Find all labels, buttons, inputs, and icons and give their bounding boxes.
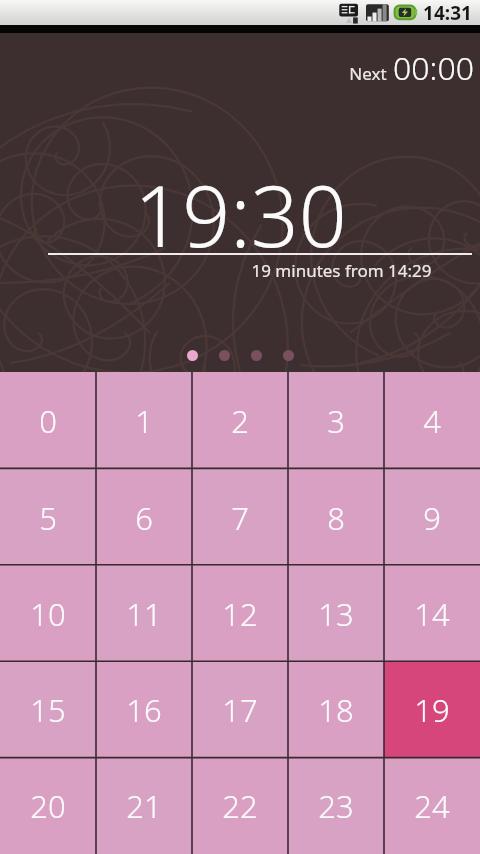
staticText: 5 <box>39 497 57 539</box>
button[interactable]: 7 <box>192 469 288 566</box>
button[interactable]: Next <box>349 41 474 85</box>
staticText: 19 <box>414 689 450 731</box>
button[interactable]: 19 <box>384 662 480 758</box>
staticText: 8 <box>327 497 345 539</box>
button[interactable]: Page 1 <box>187 350 198 361</box>
staticText: 2 <box>231 400 249 442</box>
button[interactable]: 1 <box>96 372 192 469</box>
staticText: 19:30 <box>134 157 347 271</box>
button[interactable]: 13 <box>288 566 384 662</box>
button[interactable]: 22 <box>192 758 288 854</box>
button[interactable]: 2 <box>192 372 288 469</box>
button[interactable]: 23 <box>288 758 384 854</box>
button[interactable]: 24 <box>384 758 480 854</box>
staticText: 23 <box>318 785 354 827</box>
staticText: 1 <box>135 400 153 442</box>
staticText: 18 <box>318 689 354 731</box>
button[interactable]: 0 <box>0 372 96 469</box>
staticText: 4 <box>423 400 441 442</box>
button[interactable]: Page 3 <box>251 350 262 361</box>
staticText: 21 <box>126 785 162 827</box>
button[interactable]: 10 <box>0 566 96 662</box>
button[interactable]: 4 <box>384 372 480 469</box>
staticText: 20 <box>30 785 66 827</box>
button[interactable]: 5 <box>0 469 96 566</box>
button[interactable]: 3 <box>288 372 384 469</box>
staticText: 19 minutes from 14:29 <box>251 259 432 282</box>
staticText: 14:31 <box>423 0 472 25</box>
button[interactable]: 11 <box>96 566 192 662</box>
button[interactable]: 19:30 <box>0 157 480 271</box>
staticText: 24 <box>414 785 450 827</box>
button[interactable]: Page 2 <box>219 350 230 361</box>
staticText: 00:00 <box>393 46 474 90</box>
staticText: 13 <box>318 593 354 635</box>
staticText: 10 <box>30 593 66 635</box>
button[interactable]: 18 <box>288 662 384 758</box>
button[interactable]: 8 <box>288 469 384 566</box>
staticText: 3 <box>327 400 345 442</box>
staticText: 9 <box>423 497 441 539</box>
button[interactable]: Page 4 <box>283 350 294 361</box>
staticText: 14 <box>414 593 450 635</box>
button[interactable]: 9 <box>384 469 480 566</box>
staticText: 17 <box>222 689 258 731</box>
staticText: 16 <box>126 689 162 731</box>
staticText: 15 <box>30 689 66 731</box>
button[interactable]: 15 <box>0 662 96 758</box>
staticText: 0 <box>39 400 57 442</box>
staticText: 6 <box>135 497 153 539</box>
staticText: Next <box>349 62 387 85</box>
staticText: 11 <box>126 593 162 635</box>
button[interactable]: 20 <box>0 758 96 854</box>
button[interactable]: 12 <box>192 566 288 662</box>
button[interactable]: 16 <box>96 662 192 758</box>
button[interactable]: 6 <box>96 469 192 566</box>
staticText: 7 <box>231 497 249 539</box>
button[interactable]: 17 <box>192 662 288 758</box>
button[interactable]: 14 <box>384 566 480 662</box>
staticText: 22 <box>222 785 258 827</box>
button[interactable]: 21 <box>96 758 192 854</box>
staticText: 12 <box>222 593 258 635</box>
